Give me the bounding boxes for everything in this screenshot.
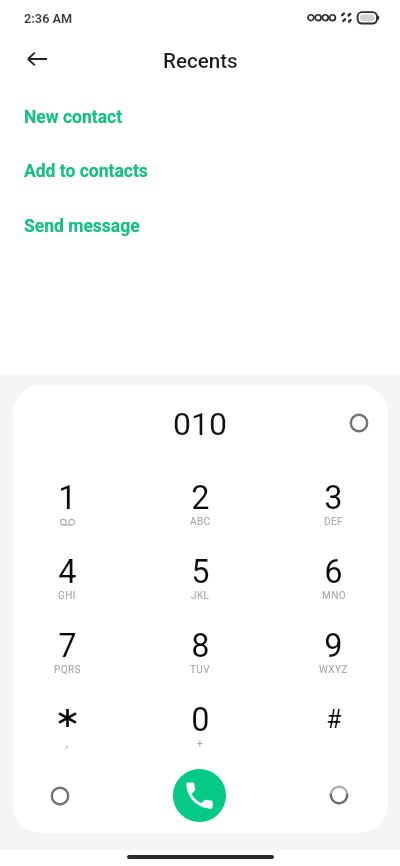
button[interactable]: 8 [134,623,267,685]
button[interactable]: Backspace [339,403,379,443]
button[interactable]: Back [17,39,57,79]
button[interactable]: 2 [134,475,267,537]
button[interactable]: Add to contacts [0,151,400,191]
staticText: 1 [58,479,77,517]
staticText: 010 [173,405,227,443]
staticText: WXYZ [319,664,348,676]
staticText: Add to contacts [24,161,148,182]
button[interactable]: 7 [0,623,134,685]
staticText: JKL [191,590,210,602]
staticText: New contact [24,107,123,128]
staticText: 0 [191,701,210,739]
button[interactable]: 4 [0,549,134,611]
button[interactable]: New contact [0,97,400,137]
button[interactable]: 0 [134,697,267,759]
staticText: 2:36 AM [24,11,73,26]
staticText: DEF [324,516,343,528]
staticText: , [66,738,69,750]
staticText: 3 [324,479,343,517]
staticText: Recents [163,49,238,73]
button[interactable]: 5 [134,549,267,611]
staticText: PQRS [54,664,81,676]
button[interactable]: 1 [0,475,134,537]
staticText: + [197,738,204,750]
staticText: # [326,705,342,734]
staticText: ABC [190,516,211,528]
staticText: 4 [58,553,77,591]
staticText: 5 [191,553,210,591]
staticText: MNO [322,590,346,602]
button[interactable]: 3 [267,475,400,537]
button[interactable]: Call [173,769,226,822]
staticText: 6 [324,553,343,591]
button[interactable]: , [0,697,134,759]
staticText: 7 [58,627,77,665]
button[interactable]: Send message [0,206,400,246]
button[interactable]: Dialpad options [40,776,80,816]
staticText: 9 [324,627,343,665]
staticText: GHI [58,590,76,602]
button[interactable]: Hide dialpad [319,775,359,815]
button[interactable]: 6 [267,549,400,611]
button[interactable]: 9 [267,623,400,685]
staticText: 8 [191,627,210,665]
staticText: 2 [191,479,210,517]
staticText: Send message [24,216,140,237]
button[interactable]: # [267,697,400,759]
staticText: TUV [190,664,211,676]
